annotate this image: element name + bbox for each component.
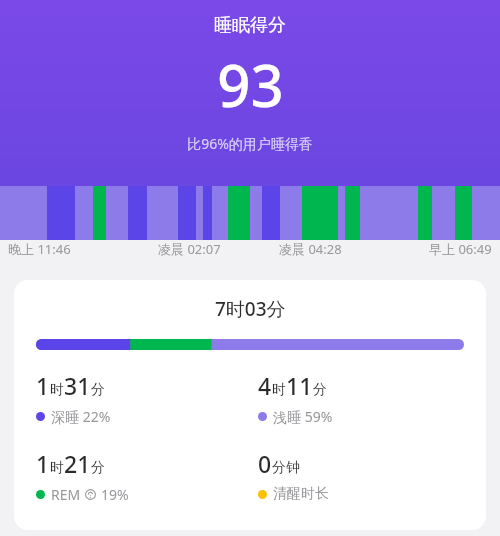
button[interactable]: 7时03分: [14, 280, 486, 530]
staticText: 19%: [101, 485, 129, 504]
staticText: 浅睡 59%: [273, 407, 333, 426]
staticText: 0: [258, 448, 272, 479]
staticText: 7时03分: [215, 296, 286, 322]
staticText: 晚上 11:46: [8, 240, 71, 258]
button[interactable]: Sleep stages timeline: [0, 186, 500, 240]
staticText: 时: [50, 459, 64, 477]
staticText: 比96%的用户睡得香: [187, 134, 313, 153]
staticText: 1: [36, 370, 50, 401]
staticText: 11: [286, 370, 313, 401]
staticText: 分: [91, 381, 105, 399]
staticText: 清醒时长: [273, 485, 329, 503]
staticText: 深睡 22%: [51, 407, 111, 426]
staticText: 分: [91, 459, 105, 477]
staticText: 1: [36, 448, 50, 479]
staticText: 21: [64, 448, 91, 479]
staticText: 4: [258, 370, 272, 401]
staticText: 早上 06:49: [429, 240, 492, 258]
button[interactable]: 4: [258, 370, 333, 426]
staticText: 分: [313, 381, 327, 399]
staticText: 睡眠得分: [214, 14, 286, 37]
button[interactable]: 1: [36, 370, 111, 426]
staticText: 凌晨 04:28: [279, 240, 342, 258]
other: What is REM: [85, 489, 96, 500]
button[interactable]: 1: [36, 448, 129, 504]
staticText: 31: [64, 370, 91, 401]
staticText: 分钟: [272, 459, 300, 477]
staticText: REM: [51, 485, 81, 504]
staticText: 凌晨 02:07: [158, 240, 221, 258]
staticText: 时: [50, 381, 64, 399]
button[interactable]: 0: [258, 448, 329, 503]
staticText: 93: [217, 45, 284, 124]
staticText: 时: [272, 381, 286, 399]
